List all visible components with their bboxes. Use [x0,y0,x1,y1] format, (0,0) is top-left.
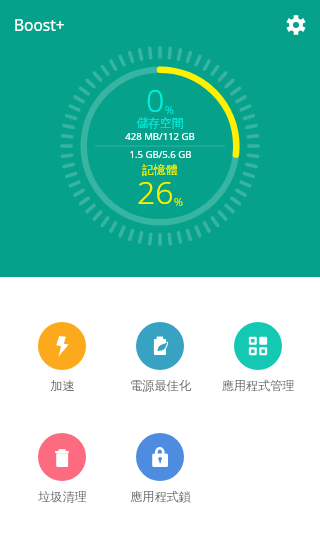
staticText: 加速 [50,378,75,393]
staticText: 0 [146,78,165,122]
staticText: % [174,194,183,209]
button[interactable]: Settings [272,1,320,49]
button[interactable]: 垃圾清理 [13,433,111,504]
button[interactable]: 應用程式管理 [209,322,307,393]
staticText: 應用程式管理 [221,378,295,393]
staticText: 26 [137,170,174,214]
staticText: % [165,102,174,117]
staticText: 應用程式鎖 [130,489,191,504]
staticText: 電源最佳化 [130,378,191,393]
button[interactable]: 應用程式鎖 [111,433,209,504]
staticText: 428 MB/112 GB [125,130,195,143]
staticText: 垃圾清理 [38,489,87,504]
staticText: 記憶體 [142,163,178,178]
staticText: 1.5 GB/5.6 GB [129,148,192,161]
button[interactable]: 加速 [13,322,111,393]
button[interactable]: 電源最佳化 [111,322,209,393]
staticText: Boost+ [14,14,65,35]
staticText: 儲存空間 [136,116,184,131]
